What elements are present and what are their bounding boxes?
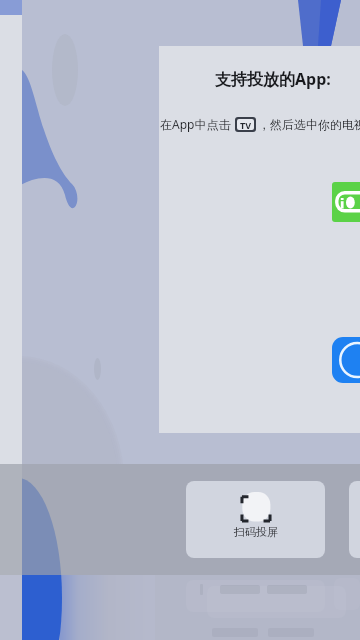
staticText: ，然后选中你的电视: [258, 117, 360, 132]
staticText: 在App中点击: [160, 116, 231, 132]
staticText: TV: [240, 119, 252, 130]
button[interactable]: 投影音箱: [349, 481, 360, 558]
button[interactable]: 酷我音乐: [332, 337, 360, 383]
button[interactable]: 扫码投屏: [186, 481, 325, 558]
staticText: 支持投放的App:: [215, 68, 331, 90]
button[interactable]: 爱奇艺: [332, 182, 360, 222]
staticText: 扫码投屏: [234, 525, 278, 539]
